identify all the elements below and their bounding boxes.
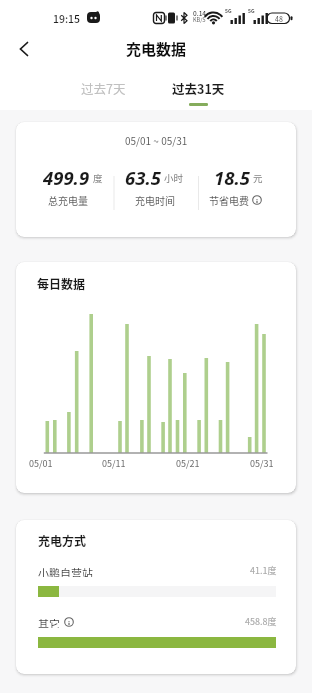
staticText: 05/01 ~ 05/31 (125, 133, 188, 147)
staticText: 458.8度 (245, 615, 277, 628)
staticText: 5G (225, 7, 232, 14)
staticText: 过去7天 (81, 79, 126, 97)
staticText: 总充电量 (48, 193, 88, 207)
staticText: 499.9 (43, 165, 90, 188)
staticText: 18.5 (214, 165, 250, 188)
button[interactable] (64, 617, 74, 627)
staticText: 小时 (164, 171, 184, 185)
staticText: 充电方式 (38, 532, 87, 549)
staticText: 度 (93, 171, 103, 185)
button[interactable] (252, 195, 262, 205)
staticText: 63.5 (125, 165, 161, 188)
staticText: 19:15 (53, 11, 81, 26)
staticText: 其它 (38, 616, 60, 628)
staticText: 05/01 (29, 457, 53, 470)
button[interactable] (8, 33, 40, 65)
staticText: 05/11 (102, 457, 126, 470)
staticText: 小鹏自营站 (38, 565, 93, 577)
staticText: KB/S (193, 16, 206, 24)
staticText: 充电时间 (135, 193, 175, 207)
staticText: 41.1度 (250, 564, 277, 577)
button[interactable]: 过去7天 (68, 76, 138, 100)
staticText: 过去31天 (172, 79, 225, 97)
staticText: 05/21 (176, 457, 200, 470)
staticText: 0.14 (193, 8, 207, 17)
staticText: 元 (253, 171, 263, 185)
staticText: 48 (275, 14, 283, 24)
staticText: 充电数据 (126, 38, 187, 60)
staticText: 5G (248, 7, 255, 14)
staticText: 05/31 (250, 457, 274, 470)
staticText: 每日数据 (37, 275, 86, 292)
button[interactable]: 过去31天 (163, 76, 233, 100)
staticText: 节省电费 (209, 193, 249, 207)
